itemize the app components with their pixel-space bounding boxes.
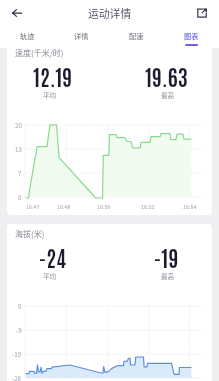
staticText: 速度(千米/时) bbox=[15, 47, 64, 59]
button[interactable]: 轨迹 bbox=[0, 26, 54, 48]
staticText: 16:48 bbox=[57, 203, 71, 211]
staticText: 20 bbox=[15, 121, 22, 130]
staticText: 13 bbox=[15, 145, 22, 154]
staticText: 0 bbox=[18, 193, 22, 202]
staticText: -24 bbox=[39, 243, 67, 271]
staticText: 12.19 bbox=[33, 62, 73, 90]
staticText: 16:47 bbox=[26, 203, 40, 211]
staticText: 海拔(米) bbox=[15, 228, 45, 240]
button[interactable]: 配速 bbox=[109, 26, 164, 48]
staticText: 16:50 bbox=[97, 203, 111, 211]
staticText: 运动详情 bbox=[88, 5, 132, 21]
staticText: 7 bbox=[18, 169, 22, 178]
staticText: 0 bbox=[18, 302, 22, 311]
button[interactable]: 图表 bbox=[164, 26, 219, 48]
staticText: 最高 bbox=[161, 90, 175, 100]
staticText: -19 bbox=[12, 350, 22, 359]
staticText: 轨迹 bbox=[20, 31, 35, 41]
staticText: -9 bbox=[16, 326, 22, 335]
staticText: -19 bbox=[154, 243, 179, 271]
staticText: 图表 bbox=[184, 31, 199, 41]
button[interactable]: Back bbox=[9, 5, 25, 21]
staticText: 16:52 bbox=[141, 203, 155, 211]
staticText: 16:54 bbox=[183, 203, 197, 211]
button[interactable]: 详情 bbox=[54, 26, 109, 48]
staticText: 平均 bbox=[43, 90, 57, 100]
staticText: 平均 bbox=[43, 271, 57, 281]
staticText: 配速 bbox=[129, 31, 144, 41]
staticText: 最高 bbox=[161, 271, 175, 281]
staticText: 详情 bbox=[74, 31, 89, 41]
button[interactable]: Share bbox=[194, 5, 210, 21]
staticText: -28 bbox=[12, 374, 22, 381]
staticText: 19.63 bbox=[145, 62, 188, 90]
